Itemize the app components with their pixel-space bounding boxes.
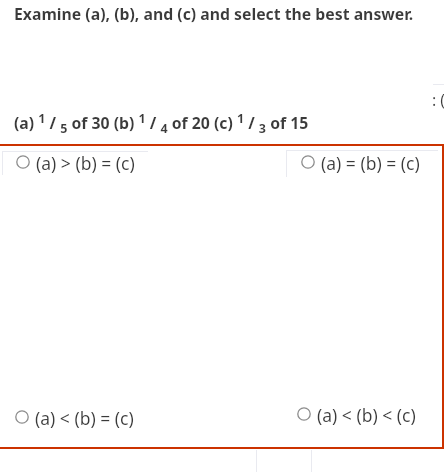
staticText: (a) 1 / 5 of 30 (b) 1 / 4 of 20 (c) 1 / …	[14, 110, 309, 137]
button[interactable]: (a) < (b) = (c)	[15, 406, 151, 428]
staticText: Examine (a), (b), and (c) and select the…	[14, 3, 414, 25]
button[interactable]: (a) > (b) = (c)	[16, 151, 152, 173]
button[interactable]: (a) < (b) < (c)	[297, 403, 433, 425]
staticText: (a) = (b) = (c)	[321, 151, 420, 173]
staticText: (a) < (b) < (c)	[317, 403, 416, 425]
staticText: (a) < (b) = (c)	[35, 406, 134, 428]
staticText: : (a	[432, 89, 444, 111]
button[interactable]: (a) = (b) = (c)	[301, 151, 437, 173]
staticText: (a) > (b) = (c)	[36, 151, 135, 173]
